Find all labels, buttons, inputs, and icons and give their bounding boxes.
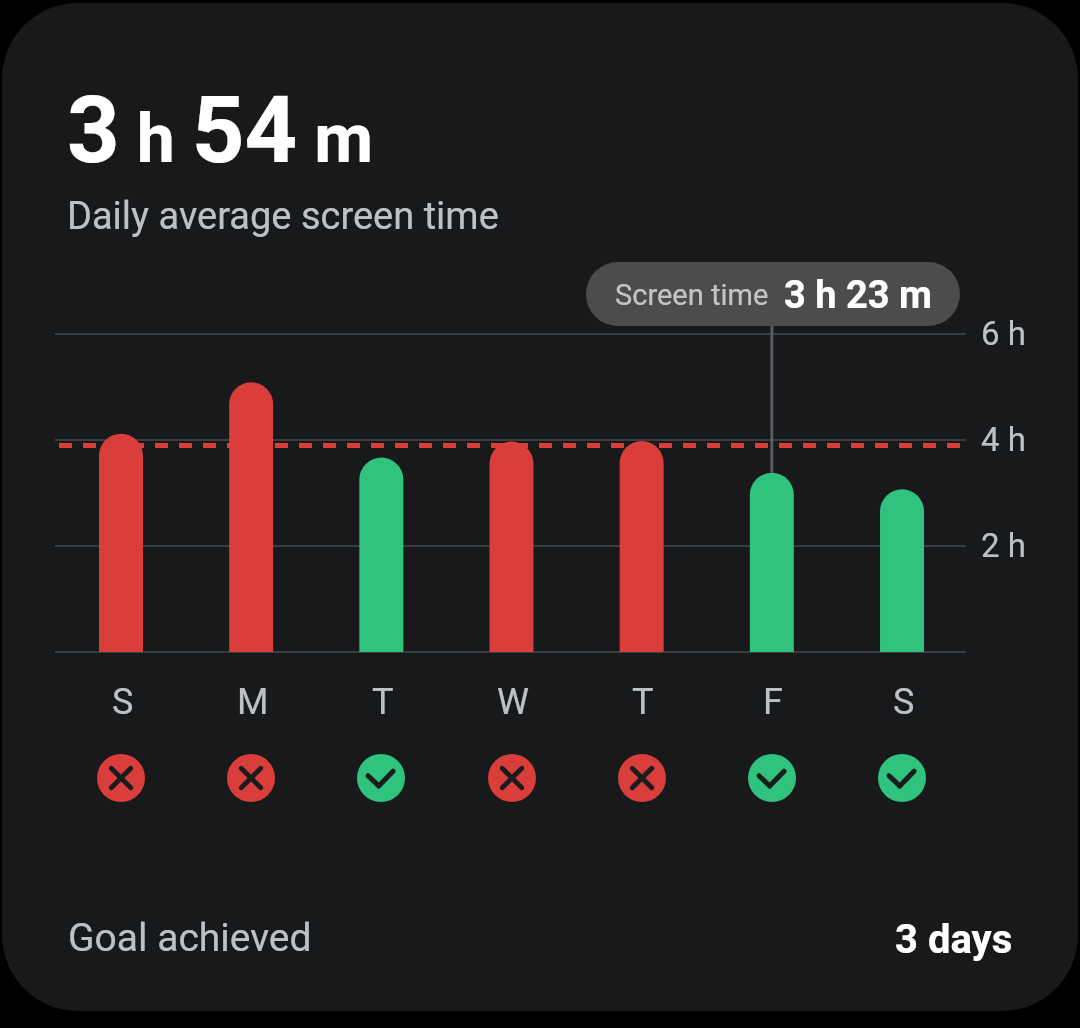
button[interactable]: Screen time	[586, 262, 960, 326]
staticText: T	[632, 681, 654, 723]
staticText: S	[893, 681, 915, 723]
staticText: W	[497, 681, 529, 723]
button[interactable]: Goal met	[357, 754, 405, 802]
staticText: Goal achieved	[68, 915, 312, 961]
staticText: 3 h 54 m	[67, 77, 374, 185]
staticText: Screen time	[615, 278, 769, 312]
staticText: 6 h	[981, 314, 1026, 353]
button[interactable]: Goal met	[748, 754, 796, 802]
button[interactable]: Goal missed	[618, 754, 666, 802]
button[interactable]: Goal missed	[97, 754, 145, 802]
button[interactable]: Goal missed	[488, 754, 536, 802]
staticText: F	[763, 681, 783, 723]
staticText: 2 h	[981, 526, 1026, 565]
staticText: 3 days	[895, 916, 1013, 963]
staticText: M	[237, 681, 269, 723]
button[interactable]: Goal met	[878, 754, 926, 802]
button[interactable]: Screen time summary card	[2, 3, 1078, 1011]
staticText: 4 h	[981, 420, 1026, 459]
staticText: 3 h 23 m	[784, 273, 932, 318]
staticText: Daily average screen time	[67, 194, 499, 239]
button[interactable]: Goal missed	[227, 754, 275, 802]
staticText: S	[112, 681, 134, 723]
staticText: T	[372, 681, 394, 723]
